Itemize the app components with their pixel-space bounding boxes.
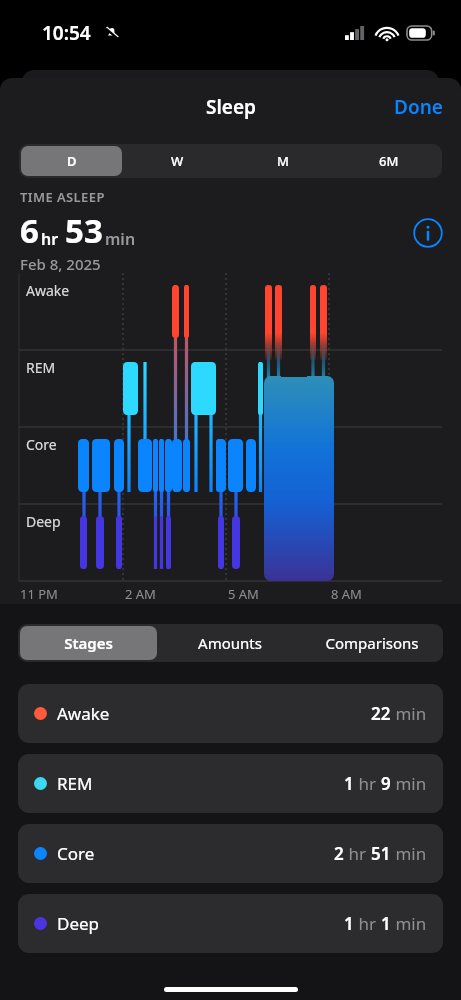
staticText: Awake — [57, 702, 110, 725]
staticText: 1 — [344, 772, 354, 795]
button[interactable]: Info — [413, 218, 443, 248]
staticText: 53 — [65, 208, 103, 253]
staticText: 22 — [371, 702, 391, 725]
staticText: REM — [57, 772, 93, 795]
staticText: min — [391, 842, 427, 865]
button[interactable]: Done — [376, 86, 461, 128]
staticText: Awake — [26, 281, 70, 300]
staticText: Deep — [57, 912, 100, 935]
staticText: 11 PM — [20, 585, 58, 603]
staticText: Amounts — [198, 633, 262, 653]
staticText: hr — [354, 912, 381, 935]
staticText: Core — [26, 435, 57, 454]
staticText: 5 AM — [228, 585, 259, 603]
staticText: 2 — [334, 842, 344, 865]
button[interactable]: 6M — [338, 146, 440, 176]
staticText: 6M — [379, 152, 399, 170]
button[interactable]: W — [126, 146, 228, 176]
staticText: min — [391, 912, 427, 935]
staticText: 1 — [344, 912, 354, 935]
staticText: TIME ASLEEP — [20, 188, 105, 206]
staticText: hr — [41, 228, 59, 250]
staticText: Comparisons — [325, 633, 419, 653]
staticText: hr — [354, 772, 381, 795]
staticText: Stages — [64, 633, 113, 653]
staticText: Core — [57, 842, 95, 865]
button[interactable]: M — [232, 146, 334, 176]
staticText: M — [277, 152, 289, 170]
staticText: hr — [344, 842, 371, 865]
staticText: 51 — [371, 842, 391, 865]
staticText: REM — [26, 358, 56, 377]
button[interactable]: Comparisons — [303, 626, 441, 660]
staticText: 6 — [20, 208, 39, 253]
staticText: D — [67, 152, 77, 170]
button[interactable]: D — [21, 146, 122, 176]
button[interactable]: Core — [18, 824, 443, 883]
staticText: Done — [394, 94, 443, 120]
staticText: min — [391, 702, 427, 725]
button[interactable]: Awake — [18, 684, 443, 743]
staticText: min — [105, 228, 136, 250]
staticText: 2 AM — [125, 585, 156, 603]
staticText: 8 AM — [331, 585, 362, 603]
staticText: Deep — [26, 512, 61, 531]
button[interactable]: REM — [18, 754, 443, 813]
button[interactable]: Amounts — [161, 626, 299, 660]
staticText: W — [171, 152, 184, 170]
staticText: 1 — [381, 912, 391, 935]
staticText: 10:54 — [42, 20, 91, 46]
staticText: Feb 8, 2025 — [20, 254, 101, 273]
staticText: 9 — [381, 772, 391, 795]
staticText: Sleep — [206, 94, 256, 120]
staticText: min — [391, 772, 427, 795]
button[interactable]: Deep — [18, 894, 443, 953]
button[interactable]: Stages — [20, 626, 157, 660]
